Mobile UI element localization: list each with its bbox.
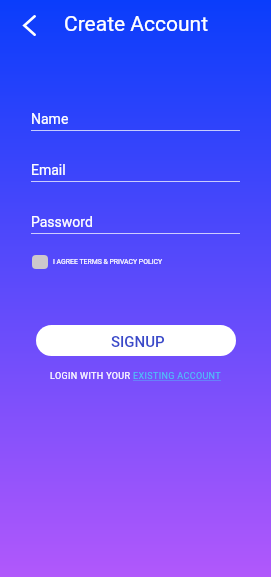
- staticText: Name: [31, 111, 69, 127]
- staticText: LOGIN WITH YOUR: [50, 371, 133, 382]
- button[interactable]: I AGREE TERMS & PRIVACY POLICY: [32, 253, 163, 271]
- button[interactable]: SIGNUP: [36, 325, 236, 356]
- staticText: Password: [31, 214, 93, 230]
- staticText: I AGREE TERMS & PRIVACY POLICY: [53, 258, 163, 266]
- staticText: SIGNUP: [111, 333, 165, 351]
- staticText: Create Account: [64, 12, 209, 37]
- button[interactable]: Email: [31, 162, 240, 182]
- staticText: Email: [31, 162, 66, 178]
- button[interactable]: Name: [31, 111, 240, 131]
- button[interactable]: EXISTING ACCOUNT: [133, 371, 221, 382]
- button[interactable]: Back: [13, 9, 45, 41]
- button[interactable]: Password: [31, 214, 240, 234]
